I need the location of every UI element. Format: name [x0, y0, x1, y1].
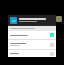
button[interactable]: Options — [8, 40, 56, 49]
button[interactable]: Options — [50, 52, 54, 56]
button[interactable]: Options — [8, 50, 56, 57]
button[interactable]: Toggle — [8, 31, 56, 39]
button[interactable]: Badge — [56, 16, 62, 22]
button[interactable] — [8, 15, 56, 25]
button[interactable]: Toggle — [50, 33, 54, 37]
button[interactable]: Options — [50, 43, 54, 47]
